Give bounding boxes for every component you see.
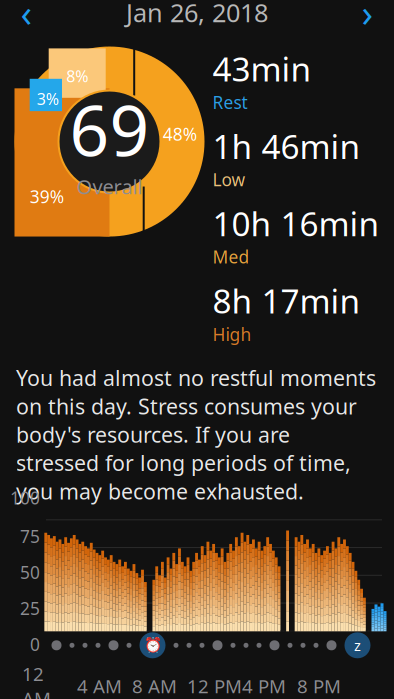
staticText: High <box>212 323 251 346</box>
staticText: 1h 46min <box>212 124 360 168</box>
staticText: Low <box>212 168 245 191</box>
button[interactable]: Previous day <box>2 0 50 32</box>
staticText: 8 PM <box>297 674 341 698</box>
staticText: 25 <box>20 597 40 620</box>
staticText: 8% <box>66 65 88 87</box>
staticText: 10h 16min <box>212 201 379 245</box>
staticText: ⏰ <box>143 637 161 654</box>
staticText: Med <box>212 245 249 268</box>
staticText: 12 PM <box>187 674 242 698</box>
staticText: 69 <box>69 83 149 175</box>
staticText: Rest <box>212 91 247 114</box>
staticText: › <box>361 0 373 37</box>
staticText: z <box>354 636 361 655</box>
staticText: 43min <box>212 46 311 91</box>
staticText: 50 <box>20 561 40 584</box>
staticText: ‹ <box>20 0 32 37</box>
staticText: 8 AM <box>132 674 177 698</box>
staticText: 8h 17min <box>212 278 360 323</box>
staticText: Overall <box>76 173 142 200</box>
staticText: You had almost no restful moments on thi… <box>16 364 376 505</box>
staticText: 48% <box>163 122 197 145</box>
staticText: 100 <box>10 486 40 509</box>
staticText: 39% <box>30 185 64 208</box>
staticText: 12 AM <box>22 661 51 699</box>
button[interactable]: Next day <box>343 0 391 32</box>
staticText: 0 <box>30 633 40 656</box>
staticText: 3% <box>37 88 59 109</box>
staticText: 4 PM <box>242 674 286 698</box>
staticText: 75 <box>20 525 40 548</box>
staticText: 4 AM <box>77 674 122 698</box>
staticText: Jan 26, 2018 <box>126 0 268 29</box>
